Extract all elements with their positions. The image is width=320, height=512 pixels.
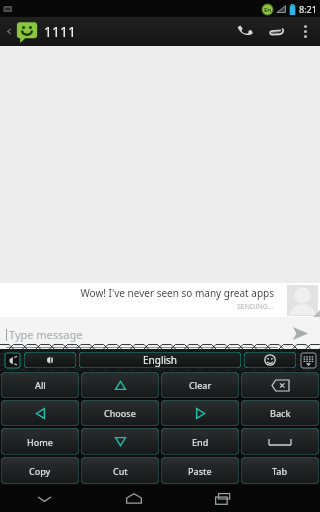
staticText: En: [264, 6, 272, 14]
button[interactable]: Right: [161, 400, 239, 426]
button[interactable]: Back: [4, 17, 14, 46]
button[interactable]: Up: [81, 372, 159, 398]
staticText: Copy: [29, 465, 51, 477]
staticText: Tab: [272, 465, 288, 477]
button[interactable]: Voice input: [3, 351, 21, 369]
staticText: Choose: [104, 407, 136, 419]
staticText: English: [143, 353, 178, 367]
staticText: Paste: [188, 465, 212, 477]
button[interactable]: English: [79, 352, 241, 368]
button[interactable]: Left: [1, 400, 79, 426]
button[interactable]: Paste: [161, 457, 239, 484]
staticText: Cut: [113, 465, 128, 477]
button[interactable]: Choose: [81, 400, 159, 426]
button[interactable]: Attach: [260, 17, 294, 46]
button[interactable]: Delete: [241, 372, 319, 398]
button[interactable]: Home: [1, 428, 79, 455]
button[interactable]: Type message: [6, 317, 280, 349]
button[interactable]: More options: [294, 17, 316, 46]
button[interactable]: Home: [89, 485, 178, 512]
staticText: Clear: [189, 379, 212, 391]
button[interactable]: Clear: [161, 372, 239, 398]
staticText: SENDING...: [237, 302, 274, 312]
button[interactable]: Hide keyboard: [0, 485, 89, 512]
staticText: 1111: [44, 22, 77, 41]
button[interactable]: Keyboard settings: [299, 351, 317, 369]
staticText: All: [35, 379, 46, 391]
button[interactable]: [244, 352, 296, 368]
button[interactable]: Copy: [1, 457, 79, 484]
button[interactable]: Down: [81, 428, 159, 455]
button[interactable]: Space: [241, 428, 319, 455]
staticText: Type message: [9, 327, 83, 342]
staticText: 8:21: [299, 3, 317, 15]
button[interactable]: Recent apps: [178, 485, 267, 512]
button[interactable]: Tab: [241, 457, 319, 484]
button[interactable]: Call: [226, 17, 260, 46]
staticText: Wow! I've never seen so many great apps: [80, 286, 274, 300]
button[interactable]: Cut: [81, 457, 159, 484]
staticText: End: [192, 436, 209, 448]
button[interactable]: All: [1, 372, 79, 398]
staticText: Back: [270, 407, 291, 419]
staticText: Home: [27, 436, 53, 448]
button[interactable]: [24, 352, 76, 368]
button[interactable]: Back: [241, 400, 319, 426]
button[interactable]: End: [161, 428, 239, 455]
button[interactable]: Send: [280, 317, 320, 349]
